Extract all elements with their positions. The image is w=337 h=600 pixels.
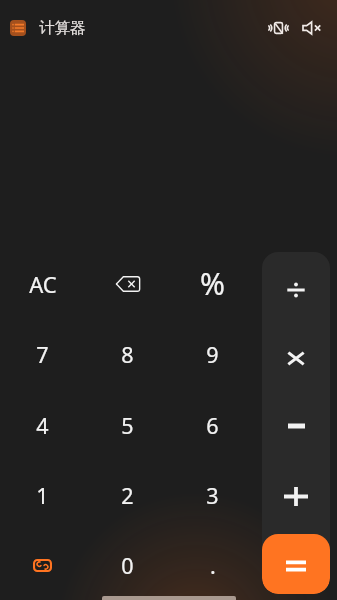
staticText: 7 <box>36 340 49 369</box>
button[interactable]: 7 <box>0 319 85 390</box>
button[interactable]: Mute <box>300 16 324 40</box>
staticText: 计算器 <box>39 18 86 38</box>
staticText: % <box>200 263 225 304</box>
staticText: 5 <box>121 411 134 440</box>
staticText: 2 <box>121 481 134 510</box>
button[interactable]: 1 <box>0 460 85 530</box>
button[interactable]: 6 <box>170 390 255 460</box>
button[interactable]: 5 <box>85 390 170 460</box>
staticText: 6 <box>206 411 219 440</box>
button[interactable]: AC <box>0 248 85 319</box>
staticText: AC <box>29 269 57 299</box>
staticText: 8 <box>121 340 134 369</box>
button[interactable]: . <box>170 530 255 600</box>
button[interactable]: 0 <box>85 530 170 600</box>
button[interactable]: Vibrate <box>266 16 290 40</box>
button[interactable]: Divide <box>262 255 330 324</box>
staticText: 9 <box>206 340 219 369</box>
button[interactable]: % <box>170 248 255 319</box>
staticText: . <box>210 551 216 580</box>
button[interactable]: Plus <box>262 462 330 531</box>
button[interactable]: Multiply <box>262 324 330 393</box>
button[interactable]: Equals <box>262 534 330 594</box>
staticText: 1 <box>36 481 49 510</box>
button[interactable]: 9 <box>170 319 255 390</box>
button[interactable]: 8 <box>85 319 170 390</box>
staticText: 3 <box>206 481 219 510</box>
staticText: 0 <box>121 551 134 580</box>
button[interactable]: Backspace <box>85 248 170 319</box>
button[interactable]: App icon <box>10 20 26 36</box>
button[interactable]: 2 <box>85 460 170 530</box>
button[interactable]: 4 <box>0 390 85 460</box>
button[interactable]: 3 <box>170 460 255 530</box>
button[interactable]: Minus <box>262 393 330 462</box>
button[interactable]: Convert <box>0 530 85 600</box>
staticText: 4 <box>36 411 49 440</box>
